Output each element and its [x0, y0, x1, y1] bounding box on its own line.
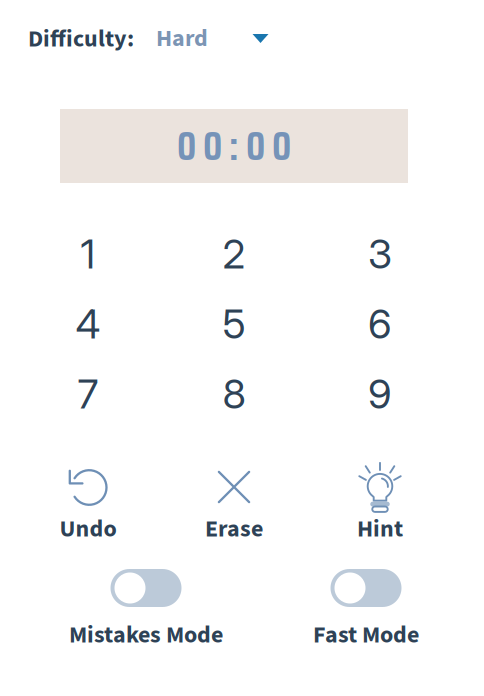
button[interactable]: 1	[33, 223, 143, 285]
staticText: Mistakes Mode	[69, 618, 223, 652]
button[interactable]: Mistakes Mode	[66, 550, 226, 650]
staticText: 4	[75, 300, 100, 348]
button[interactable]: Hard	[155, 16, 282, 60]
staticText: 7	[77, 370, 98, 418]
staticText: 5	[222, 300, 245, 348]
button[interactable]: 9	[325, 363, 435, 425]
staticText: 8	[222, 370, 245, 418]
staticText: 3	[368, 230, 392, 278]
button[interactable]: 7	[33, 363, 143, 425]
button[interactable]: Erase	[174, 450, 294, 550]
button[interactable]: 3	[325, 223, 435, 285]
staticText: 9	[368, 370, 392, 418]
button[interactable]: 6	[325, 293, 435, 355]
staticText: Erase	[205, 512, 263, 546]
staticText: 0 0 : 0 0	[177, 114, 291, 177]
staticText: Hint	[357, 512, 403, 546]
button[interactable]: 8	[179, 363, 289, 425]
staticText: 1	[80, 230, 95, 278]
staticText: 2	[222, 230, 245, 278]
staticText: Undo	[59, 512, 116, 546]
button[interactable]: 4	[33, 293, 143, 355]
staticText: Fast Mode	[313, 618, 419, 652]
button[interactable]: 5	[179, 293, 289, 355]
staticText: Difficulty:	[28, 22, 134, 56]
button[interactable]: Fast Mode	[286, 550, 446, 650]
staticText: 6	[368, 300, 392, 348]
button[interactable]: Hint	[320, 450, 440, 550]
staticText: Hard	[156, 21, 208, 56]
button[interactable]: Undo	[28, 450, 148, 550]
button[interactable]: 2	[179, 223, 289, 285]
